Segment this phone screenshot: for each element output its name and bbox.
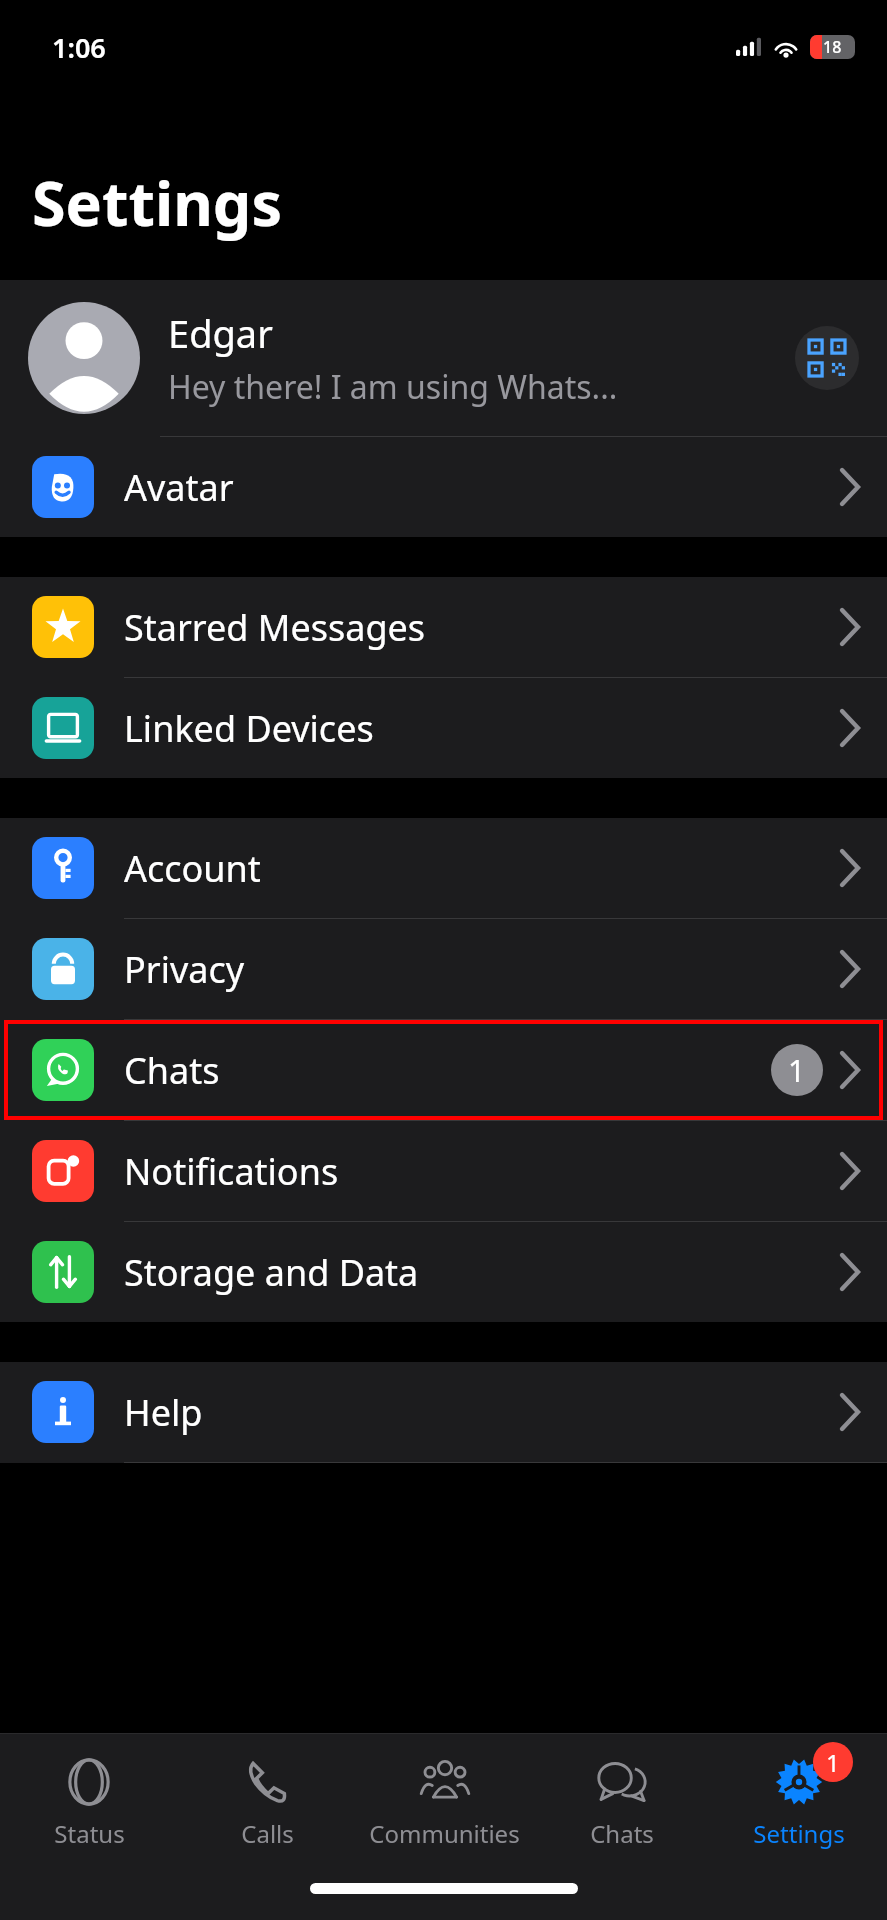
staticText: Chats — [124, 1046, 771, 1095]
button[interactable]: Storage and Data — [0, 1222, 887, 1322]
staticText: 18 — [823, 36, 842, 58]
staticText: Settings — [753, 1817, 845, 1850]
staticText: Hey there! I am using Whats... — [168, 365, 618, 409]
staticText: Privacy — [124, 945, 839, 994]
button[interactable]: Linked Devices — [0, 678, 887, 778]
button[interactable]: QR code — [795, 326, 859, 390]
button[interactable]: Account — [0, 818, 887, 918]
staticText: Storage and Data — [124, 1248, 839, 1297]
button[interactable]: Calls — [178, 1749, 356, 1850]
staticText: Communities — [369, 1817, 520, 1850]
button[interactable]: Notifications — [0, 1121, 887, 1221]
button[interactable]: Chats — [0, 1020, 887, 1120]
button[interactable]: Help — [0, 1362, 887, 1462]
button[interactable]: Chats — [533, 1749, 710, 1850]
staticText: 1 — [826, 1746, 840, 1779]
button[interactable]: Communities — [356, 1749, 533, 1850]
staticText: Starred Messages — [124, 603, 839, 652]
button[interactable]: Avatar — [0, 437, 887, 537]
staticText: 1 — [788, 1050, 806, 1091]
staticText: Status — [54, 1817, 125, 1850]
button[interactable]: Starred Messages — [0, 577, 887, 677]
staticText: Avatar — [124, 463, 839, 512]
staticText: Chats — [590, 1817, 654, 1850]
staticText: Settings — [32, 161, 283, 244]
button[interactable]: Status — [0, 1749, 178, 1850]
button[interactable]: 1 — [710, 1749, 887, 1850]
staticText: Linked Devices — [124, 704, 839, 753]
staticText: Help — [124, 1388, 839, 1437]
staticText: 1:06 — [52, 29, 106, 66]
staticText: Account — [124, 844, 839, 893]
staticText: Calls — [241, 1817, 294, 1850]
staticText: Edgar — [168, 307, 273, 359]
staticText: Notifications — [124, 1147, 839, 1196]
button[interactable]: Privacy — [0, 919, 887, 1019]
button[interactable]: Edgar — [0, 280, 887, 436]
